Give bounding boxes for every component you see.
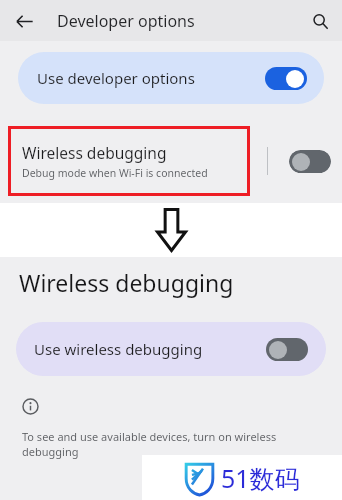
button[interactable]: Toggle off	[289, 150, 331, 173]
staticText: Use wireless debugging	[34, 339, 266, 359]
staticText: 51数码	[221, 461, 300, 495]
staticText: Use developer options	[37, 68, 265, 88]
button[interactable]: Back	[6, 3, 42, 39]
button[interactable]: Toggle off	[266, 338, 308, 361]
staticText: To see and use available devices, turn o…	[22, 429, 277, 459]
staticText: Debug mode when Wi-Fi is connected	[22, 166, 208, 180]
button[interactable]: Use wireless debugging	[16, 322, 326, 376]
staticText: Wireless debugging	[19, 267, 234, 298]
button[interactable]: Wireless debugging	[8, 126, 250, 196]
button[interactable]: Wireless debugging toggle	[289, 150, 331, 173]
staticText: Wireless debugging	[22, 142, 167, 163]
button[interactable]: Use developer options	[18, 52, 324, 104]
staticText: Developer options	[57, 10, 195, 32]
button[interactable]: Search	[303, 4, 337, 38]
button[interactable]: Toggle on	[265, 67, 307, 90]
